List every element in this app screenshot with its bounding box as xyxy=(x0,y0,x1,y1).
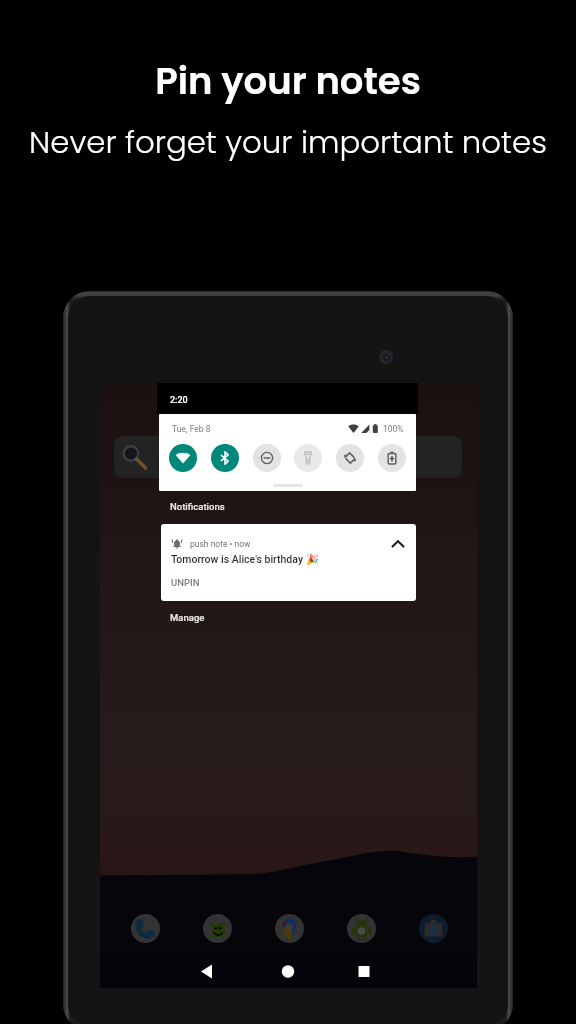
button[interactable]: Battery saver xyxy=(378,444,406,472)
button[interactable]: Bluetooth xyxy=(211,444,239,472)
staticText: Notifications xyxy=(170,501,225,512)
button[interactable]: Camera xyxy=(417,912,449,944)
button[interactable]: Flashlight xyxy=(294,444,322,472)
button[interactable]: Phone xyxy=(129,912,161,944)
staticText: Tue, Feb 8 xyxy=(172,424,211,434)
button[interactable]: Wi-Fi xyxy=(169,444,197,472)
staticText: UNPIN xyxy=(171,577,200,588)
staticText: Manage xyxy=(170,612,205,623)
staticText: 100% xyxy=(383,424,404,434)
button[interactable]: Android xyxy=(345,912,377,944)
staticText: Tomorrow is Alice's birthday 🎉 xyxy=(171,553,319,565)
button[interactable]: UNPIN xyxy=(171,577,200,588)
button[interactable]: Manage xyxy=(170,612,205,623)
button[interactable]: Search xyxy=(114,436,462,478)
staticText: push note • now xyxy=(190,539,251,549)
staticText: 2:20 xyxy=(170,395,188,406)
button[interactable]: Collapse notification xyxy=(389,535,407,553)
staticText: Never forget your important notes xyxy=(0,121,576,164)
button[interactable]: Do not disturb xyxy=(253,444,281,472)
button[interactable]: push note • now xyxy=(161,524,416,601)
staticText: Pin your notes xyxy=(0,55,576,107)
button[interactable]: Maps xyxy=(273,912,305,944)
button[interactable]: Auto rotate xyxy=(336,444,364,472)
button[interactable]: Messages xyxy=(201,912,233,944)
